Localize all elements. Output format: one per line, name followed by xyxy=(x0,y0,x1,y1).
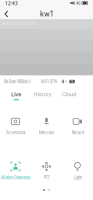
staticText: Bit Rate 980kb/s xyxy=(4,78,31,85)
button[interactable]: Live xyxy=(3,87,29,103)
staticText: 12:43 xyxy=(5,0,18,7)
staticText: PTZ xyxy=(43,174,49,181)
button[interactable]: Screenshot xyxy=(0,116,31,135)
button[interactable]: History xyxy=(29,87,56,103)
staticText: Record xyxy=(71,129,83,136)
button[interactable]: Mute xyxy=(61,77,67,85)
button[interactable]: Cloud xyxy=(56,87,82,103)
staticText: Screenshot xyxy=(6,129,25,136)
button[interactable]: Record xyxy=(62,116,93,135)
staticText: Light xyxy=(73,174,81,181)
button[interactable]: PTZ xyxy=(31,161,62,180)
button[interactable]: Light xyxy=(62,161,93,180)
staticText: WiFi 87% xyxy=(41,78,57,85)
button[interactable]: HD xyxy=(69,80,75,83)
button[interactable]: Back xyxy=(1,8,12,19)
staticText: Live xyxy=(11,91,21,97)
button[interactable]: Intercom xyxy=(31,116,62,135)
staticText: HD xyxy=(69,79,75,84)
staticText: Cloud xyxy=(62,91,76,97)
button[interactable]: Motion Detection xyxy=(0,161,31,180)
staticText: Motion Detection xyxy=(1,174,30,181)
staticText: 2024-05-21 12:43:10 xyxy=(2,20,35,26)
staticText: Intercom xyxy=(38,129,54,136)
staticText: kw1 xyxy=(40,10,53,18)
staticText: 4G xyxy=(76,0,80,6)
staticText: History xyxy=(33,91,51,97)
